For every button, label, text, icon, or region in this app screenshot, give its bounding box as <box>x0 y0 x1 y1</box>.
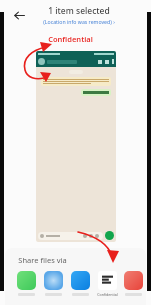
button[interactable]: Back <box>9 5 29 25</box>
staticText: 1 item selected <box>48 5 110 17</box>
button[interactable]: Link <box>13 271 40 296</box>
button[interactable]: Confidential <box>94 271 121 297</box>
staticText: Confidential <box>97 292 118 297</box>
button[interactable]: Messages <box>67 271 94 296</box>
button[interactable] <box>36 51 116 242</box>
staticText: Share files via <box>18 255 67 265</box>
staticText: Confidential <box>48 34 93 44</box>
button[interactable]: Nearby <box>40 271 67 296</box>
staticText: (Location info was removed) › <box>43 18 115 25</box>
button[interactable]: More <box>121 271 146 296</box>
